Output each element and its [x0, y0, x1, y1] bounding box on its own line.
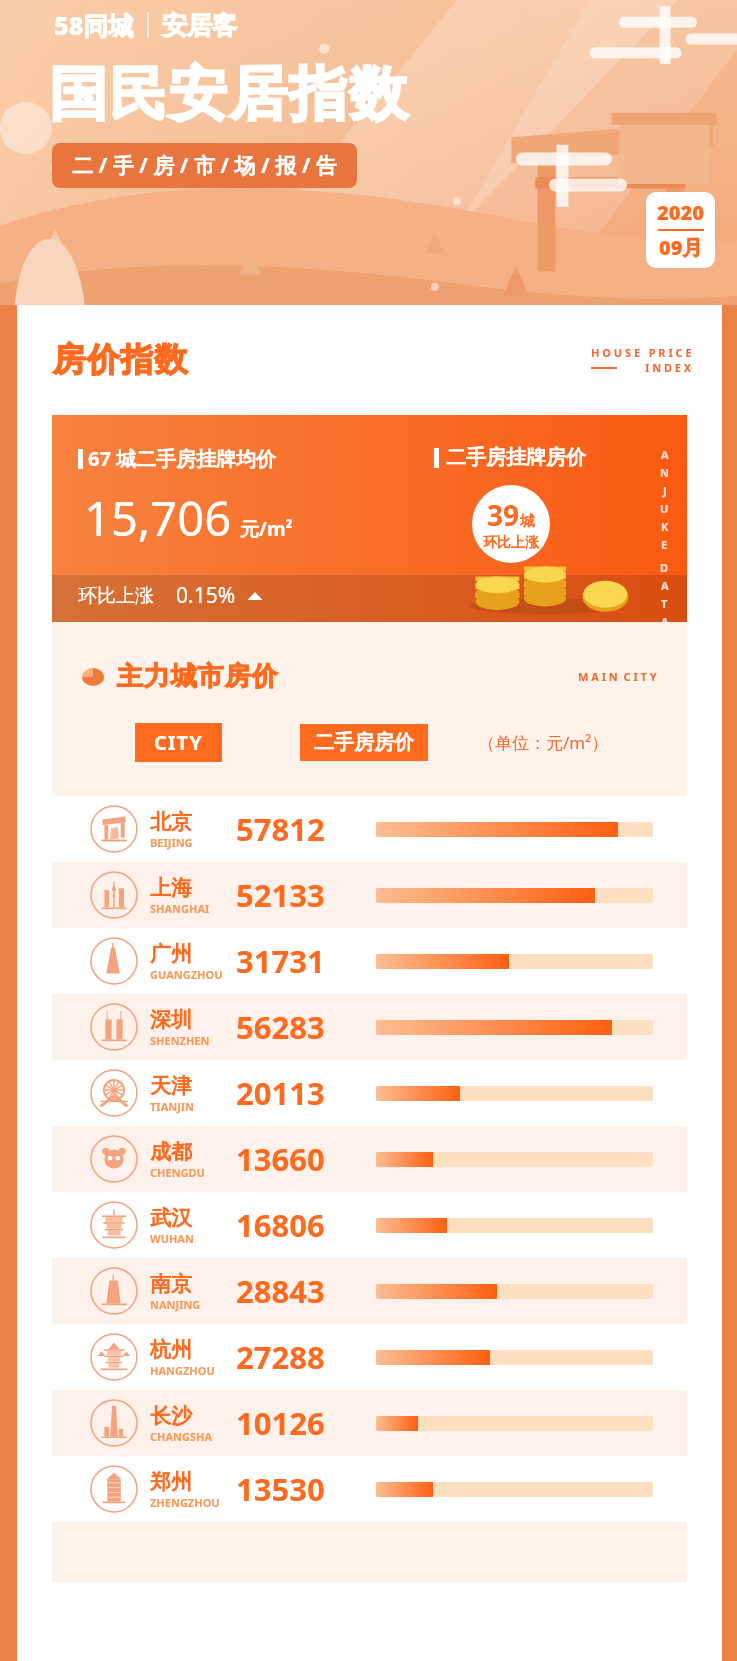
staticText: 上海 — [150, 875, 192, 901]
staticText: 成都 — [150, 1139, 192, 1165]
staticText: 郑州 — [150, 1469, 192, 1495]
staticText: A — [661, 614, 669, 622]
other: 上海 — [90, 871, 138, 919]
staticText: 67 城二手房挂牌均价 — [88, 445, 277, 472]
button[interactable]: 2020 — [646, 192, 715, 268]
staticText: J — [663, 483, 667, 498]
staticText: A — [661, 578, 669, 593]
button[interactable]: 67 城二手房挂牌均价 — [52, 415, 687, 622]
staticText: BEIJING — [150, 835, 193, 850]
other: 天津 — [90, 1069, 138, 1117]
staticText: 主力城市房价 — [116, 660, 278, 693]
staticText: 16806 — [236, 1204, 376, 1246]
staticText: D — [660, 560, 669, 575]
staticText: N — [660, 465, 669, 480]
staticText: 环比上涨 — [78, 584, 154, 608]
button[interactable]: 上海 — [52, 862, 687, 928]
button[interactable]: 天津 — [52, 1060, 687, 1126]
staticText: SHENZHEN — [150, 1033, 210, 1048]
staticText: K — [661, 519, 669, 534]
staticText: 武汉 — [150, 1205, 192, 1231]
staticText: 北京 — [150, 809, 192, 835]
staticText: 20113 — [236, 1072, 376, 1114]
staticText: 15,706 — [84, 486, 232, 550]
staticText: 09月 — [659, 234, 703, 261]
staticText: 南京 — [150, 1271, 192, 1297]
staticText: A — [661, 447, 669, 462]
staticText: 31731 — [236, 940, 376, 982]
staticText: WUHAN — [150, 1231, 194, 1246]
button[interactable]: 广州 — [52, 928, 687, 994]
staticText: 56283 — [236, 1006, 376, 1048]
staticText: M A I N C I T Y — [578, 669, 657, 684]
other: 武汉 — [90, 1201, 138, 1249]
staticText: ZHENGZHOU — [150, 1495, 220, 1510]
staticText: 2020 — [657, 199, 704, 226]
staticText: 国民安居指数 — [48, 58, 408, 131]
staticText: 房价指数 — [52, 339, 188, 381]
staticText: CHENGDU — [150, 1165, 205, 1180]
staticText: 52133 — [236, 874, 376, 916]
button[interactable]: 成都 — [52, 1126, 687, 1192]
staticText: SHANGHAI — [150, 901, 210, 916]
staticText: 10126 — [236, 1402, 376, 1444]
staticText: 杭州 — [150, 1337, 192, 1363]
button[interactable]: 39 — [472, 485, 550, 563]
staticText: 广州 — [150, 941, 192, 967]
staticText: 安居客 — [162, 10, 237, 41]
other: 长沙 — [90, 1399, 138, 1447]
other: 郑州 — [90, 1465, 138, 1513]
staticText: 58同城 — [54, 8, 134, 42]
staticText: 39 — [487, 496, 520, 534]
staticText: 深圳 — [150, 1007, 192, 1033]
staticText: H O U S E P R I C E — [591, 345, 692, 360]
other: 深圳 — [90, 1003, 138, 1051]
other: 南京 — [90, 1267, 138, 1315]
staticText: 环比上涨 — [483, 534, 539, 552]
button[interactable]: 二 / 手 / 房 / 市 / 场 / 报 / 告 — [52, 143, 357, 188]
staticText: CITY — [154, 729, 203, 756]
button[interactable]: 南京 — [52, 1258, 687, 1324]
staticText: E — [661, 537, 668, 552]
button[interactable]: 武汉 — [52, 1192, 687, 1258]
staticText: U — [660, 501, 669, 516]
button[interactable]: CITY — [135, 723, 222, 762]
staticText: 28843 — [236, 1270, 376, 1312]
staticText: I N D E X — [645, 360, 692, 375]
staticText: 元/m² — [240, 516, 293, 542]
staticText: 57812 — [236, 808, 376, 850]
staticText: NANJING — [150, 1297, 201, 1312]
other: 杭州 — [90, 1333, 138, 1381]
other: 成都 — [90, 1135, 138, 1183]
staticText: HANGZHOU — [150, 1363, 215, 1378]
staticText: 城 — [520, 512, 535, 531]
button[interactable]: 深圳 — [52, 994, 687, 1060]
button[interactable]: 长沙 — [52, 1390, 687, 1456]
staticText: 二 / 手 / 房 / 市 / 场 / 报 / 告 — [72, 151, 337, 180]
staticText: 0.15% — [176, 581, 236, 610]
staticText: 天津 — [150, 1073, 192, 1099]
other: 广州 — [90, 937, 138, 985]
staticText: 13530 — [236, 1468, 376, 1510]
staticText: GUANGZHOU — [150, 967, 223, 982]
staticText: 27288 — [236, 1336, 376, 1378]
button[interactable]: 郑州 — [52, 1456, 687, 1522]
staticText: T — [661, 596, 668, 611]
button[interactable]: 北京 — [52, 796, 687, 862]
staticText: （单位：元/m²） — [478, 731, 609, 754]
staticText: 二手房挂牌房价 — [446, 445, 586, 470]
button[interactable]: 杭州 — [52, 1324, 687, 1390]
staticText: CHANGSHA — [150, 1429, 213, 1444]
button[interactable]: 二手房房价 — [300, 724, 428, 761]
staticText: 二手房房价 — [314, 730, 414, 755]
other: 北京 — [90, 805, 138, 853]
staticText: 长沙 — [150, 1403, 192, 1429]
staticText: 13660 — [236, 1138, 376, 1180]
staticText: TIANJIN — [150, 1099, 195, 1114]
